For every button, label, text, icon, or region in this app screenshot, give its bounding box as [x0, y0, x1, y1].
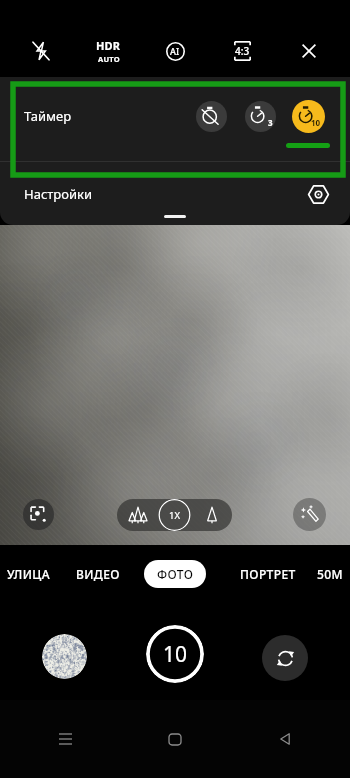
staticText: AUTO: [98, 54, 120, 64]
button[interactable]: 50М: [310, 560, 349, 588]
button[interactable]: Таймер: [0, 77, 350, 161]
staticText: 4:3: [235, 44, 250, 58]
staticText: AI: [170, 45, 180, 57]
button[interactable]: Aspect ratio 4 to 3: [216, 25, 268, 77]
staticText: ФОТО: [157, 566, 194, 582]
staticText: 3: [268, 117, 273, 128]
button[interactable]: Filters: [293, 498, 326, 531]
button[interactable]: Flash off: [15, 25, 67, 77]
button[interactable]: Google Lens: [23, 499, 54, 530]
button[interactable]: Shutter: [146, 625, 204, 683]
button[interactable]: AI scene: [149, 25, 201, 77]
button[interactable]: 1X: [158, 499, 191, 531]
button[interactable]: HDR auto: [82, 25, 134, 77]
button[interactable]: ФОТО: [144, 560, 206, 588]
button[interactable]: ВИДЕО: [70, 560, 125, 588]
staticText: УЛИЦА: [7, 566, 51, 582]
button[interactable]: Timer 3 seconds: [245, 101, 276, 132]
button[interactable]: Telephoto: [191, 499, 232, 531]
button[interactable]: Ultra wide 0.6x: [117, 499, 158, 531]
staticText: ВИДЕО: [76, 566, 120, 582]
staticText: 10: [311, 117, 321, 128]
staticText: 1X: [169, 509, 181, 522]
button[interactable]: Switch camera: [262, 635, 308, 681]
button[interactable]: Timer off: [196, 101, 227, 132]
button[interactable]: Home: [154, 718, 196, 760]
staticText: Настройки: [24, 185, 93, 203]
button[interactable]: Gallery: [42, 634, 87, 679]
button[interactable]: Close: [283, 25, 335, 77]
staticText: Таймер: [24, 107, 72, 125]
staticText: ПОРТРЕТ: [240, 566, 296, 582]
button[interactable]: Настройки: [0, 162, 350, 225]
button[interactable]: Timer 10 seconds: [292, 100, 325, 133]
button[interactable]: Recent apps: [44, 718, 86, 760]
staticText: 10: [163, 640, 188, 669]
button[interactable]: ПОРТРЕТ: [232, 560, 303, 588]
button[interactable]: Back: [264, 718, 306, 760]
staticText: HDR: [96, 38, 121, 53]
staticText: 50М: [317, 566, 343, 582]
button[interactable]: УЛИЦА: [1, 560, 56, 588]
